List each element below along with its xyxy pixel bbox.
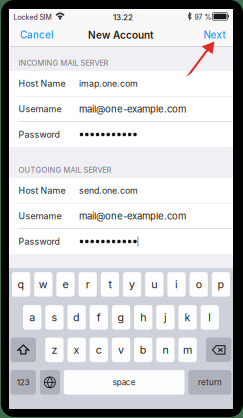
staticText: INCOMING MAIL SERVER <box>18 59 108 68</box>
button[interactable]: g <box>112 305 130 330</box>
button[interactable]: q <box>12 272 30 297</box>
button[interactable]: Host Name <box>9 178 233 203</box>
button[interactable]: n <box>156 338 174 362</box>
button[interactable]: j <box>156 305 174 330</box>
button[interactable]: Next <box>196 24 233 46</box>
staticText: b <box>140 343 147 356</box>
staticText: f <box>97 311 101 324</box>
staticText: s <box>51 311 57 324</box>
button[interactable]: w <box>34 272 52 297</box>
button[interactable]: Cancel <box>9 24 60 46</box>
staticText: m <box>183 343 192 356</box>
staticText: OUTGOING MAIL SERVER <box>18 166 111 175</box>
staticText: v <box>118 343 124 356</box>
button[interactable]: b <box>134 338 152 362</box>
staticText: mail@one-example.com <box>79 103 186 115</box>
staticText: Cancel <box>20 29 53 41</box>
staticText: g <box>117 311 124 324</box>
button[interactable]: Password <box>9 122 233 147</box>
button[interactable]: Next keyboard <box>40 370 60 395</box>
staticText: space <box>113 377 136 387</box>
staticText: Next <box>203 29 225 41</box>
staticText: k <box>185 311 191 324</box>
button[interactable]: o <box>189 272 208 297</box>
staticText: Host Name <box>18 185 65 196</box>
button[interactable]: c <box>90 338 108 362</box>
staticText: mail@one-example.com <box>79 210 186 222</box>
button[interactable]: Host Name <box>9 71 233 96</box>
button[interactable]: z <box>45 338 63 362</box>
button[interactable]: p <box>212 272 230 297</box>
button[interactable]: f <box>90 305 108 330</box>
staticText: Username <box>18 211 61 221</box>
button[interactable]: Password <box>9 229 233 254</box>
staticText: Host Name <box>18 78 65 89</box>
staticText: Username <box>18 104 61 114</box>
staticText: 97 % <box>195 13 212 21</box>
staticText: c <box>96 343 102 356</box>
staticText: 13.22 <box>113 12 133 22</box>
button[interactable]: e <box>56 272 75 297</box>
staticText: i <box>175 278 178 291</box>
button[interactable]: u <box>145 272 163 297</box>
button[interactable]: d <box>67 305 86 330</box>
staticText: t <box>108 278 111 291</box>
button[interactable]: s <box>45 305 63 330</box>
button[interactable]: return <box>188 370 231 395</box>
staticText: o <box>196 278 202 291</box>
staticText: e <box>62 278 68 291</box>
staticText: x <box>74 343 80 356</box>
button[interactable]: 123 <box>11 370 36 395</box>
staticText: j <box>164 311 167 324</box>
staticText: Locked SIM <box>13 13 51 21</box>
staticText: u <box>151 278 157 291</box>
button[interactable]: Username <box>9 96 233 121</box>
button[interactable]: Shift <box>11 338 36 362</box>
button[interactable]: Username <box>9 203 233 228</box>
staticText: n <box>162 343 168 356</box>
button[interactable]: y <box>123 272 141 297</box>
staticText: z <box>51 343 57 356</box>
staticText: a <box>29 311 35 324</box>
staticText: Password <box>18 129 59 140</box>
button[interactable]: r <box>78 272 97 297</box>
button[interactable]: v <box>112 338 130 362</box>
button[interactable]: i <box>167 272 186 297</box>
button[interactable]: h <box>134 305 152 330</box>
button[interactable]: k <box>178 305 197 330</box>
staticText: y <box>129 278 135 291</box>
button[interactable]: t <box>101 272 119 297</box>
staticText: d <box>73 311 80 324</box>
button[interactable]: l <box>201 305 219 330</box>
staticText: New Account <box>88 29 154 41</box>
button[interactable]: a <box>23 305 41 330</box>
button[interactable]: space <box>64 370 184 395</box>
staticText: q <box>18 278 25 291</box>
button[interactable]: m <box>178 338 197 362</box>
staticText: Password <box>18 236 59 247</box>
staticText: h <box>140 311 146 324</box>
staticText: return <box>198 377 222 387</box>
button[interactable]: Delete <box>206 338 231 362</box>
button[interactable]: x <box>67 338 86 362</box>
staticText: r <box>86 278 90 291</box>
staticText: w <box>39 278 48 291</box>
staticText: 123 <box>17 377 30 387</box>
staticText: p <box>217 278 224 291</box>
staticText: imap.one.com <box>79 78 138 89</box>
staticText: l <box>208 311 211 324</box>
staticText: send.one.com <box>79 185 138 196</box>
